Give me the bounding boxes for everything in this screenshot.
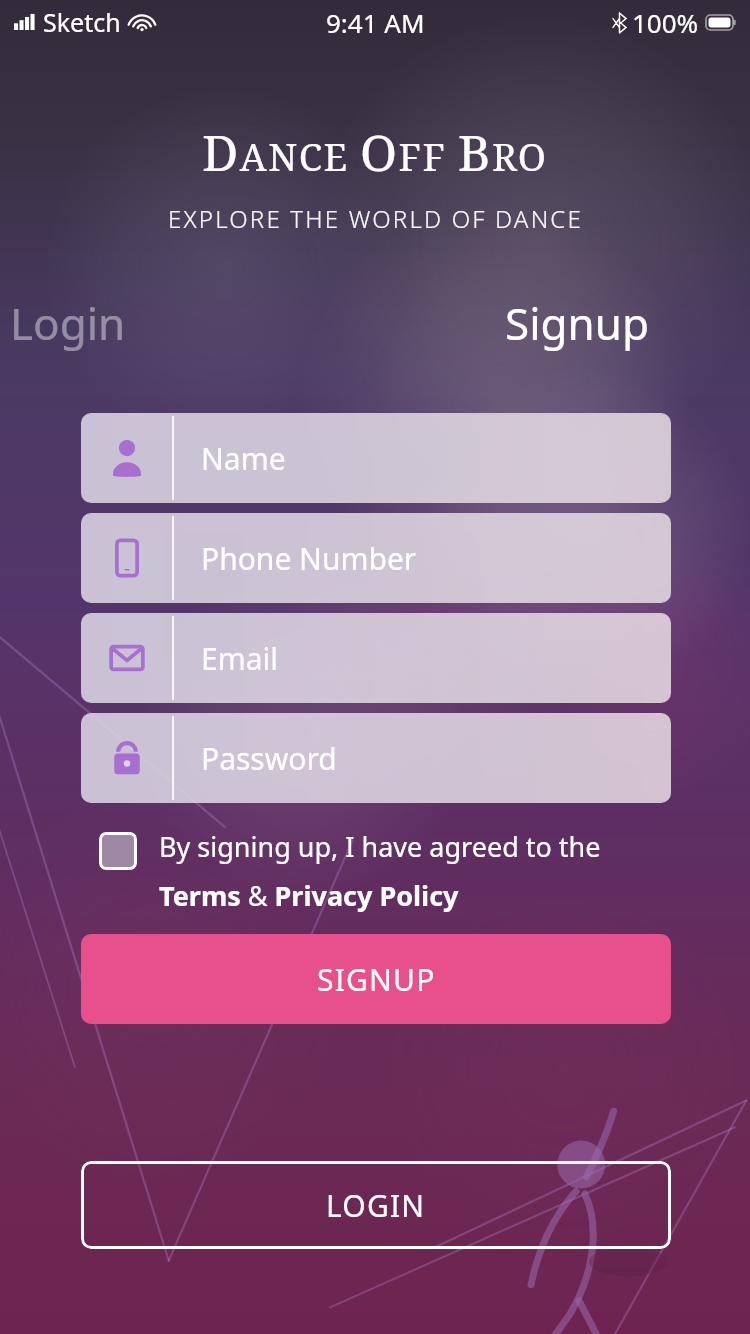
button[interactable]: Name [81, 413, 671, 503]
other: Agree to terms checkbox [99, 832, 137, 870]
button[interactable]: Login [0, 285, 375, 361]
staticText: EXPLORE THE WORLD OF DANCE [168, 202, 583, 235]
staticText: 9:41 AM [326, 5, 425, 40]
staticText: DANCE OFF BRO [202, 118, 548, 186]
button[interactable]: Phone Number [81, 513, 671, 603]
staticText: 100% [632, 5, 699, 40]
staticText: Signup [505, 293, 650, 353]
staticText: Phone Number [201, 538, 417, 579]
button[interactable]: LOGIN [81, 1161, 671, 1249]
staticText: Login [10, 293, 126, 353]
button[interactable]: Email [81, 613, 671, 703]
button[interactable]: SIGNUP [81, 934, 671, 1024]
staticText: SIGNUP [317, 959, 436, 1000]
button[interactable]: Agree to terms checkbox [99, 828, 601, 914]
staticText: Terms & Privacy Policy [159, 877, 459, 914]
staticText: By signing up, I have agreed to the [159, 828, 601, 865]
button[interactable]: Signup [375, 285, 750, 361]
button[interactable]: Password [81, 713, 671, 803]
staticText: Email [201, 638, 279, 679]
staticText: LOGIN [326, 1185, 426, 1226]
staticText: Password [201, 738, 337, 779]
staticText: Sketch [43, 5, 121, 39]
staticText: Name [201, 438, 286, 479]
